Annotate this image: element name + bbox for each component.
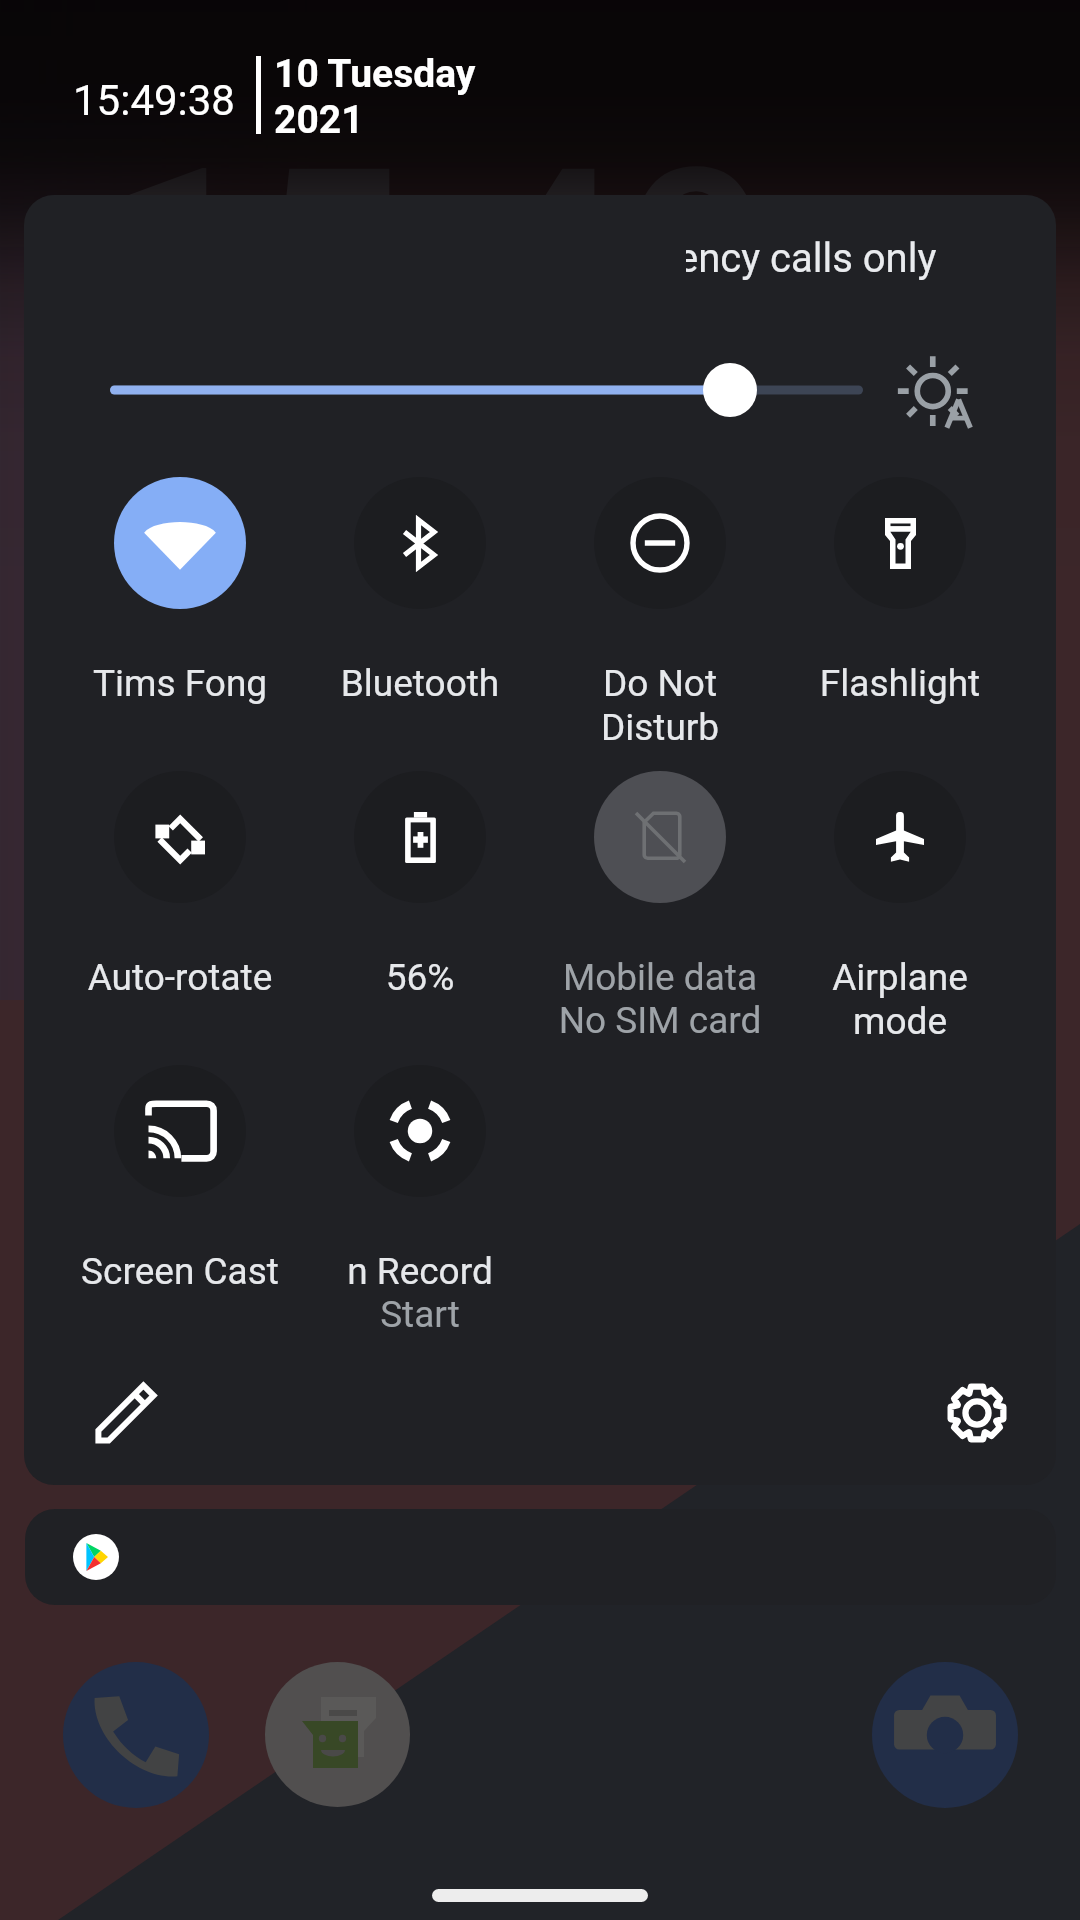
staticText: Auto-rotate xyxy=(62,956,298,999)
button[interactable]: Tims Fong xyxy=(62,471,298,751)
staticText: Do Not Disturb xyxy=(542,662,778,749)
button[interactable]: Flashlight xyxy=(782,471,1018,751)
button[interactable]: Settings xyxy=(929,1365,1025,1461)
button[interactable]: 56% xyxy=(302,765,538,1045)
button[interactable]: Airplane mode xyxy=(782,765,1018,1045)
staticText: 15:49 xyxy=(108,112,774,419)
staticText: n Record xyxy=(302,1250,538,1293)
staticText: No SIM card xyxy=(542,999,778,1042)
button[interactable]: Screen Cast xyxy=(62,1059,298,1339)
staticText: 2021 xyxy=(274,97,364,143)
staticText: Bluetooth xyxy=(302,662,538,705)
staticText: 10 Tuesday xyxy=(274,51,476,97)
staticText: Screen Cast xyxy=(62,1250,298,1293)
staticText: Start xyxy=(302,1293,538,1336)
button[interactable]: n Record xyxy=(302,1059,538,1339)
staticText: Mobile data xyxy=(542,956,778,999)
staticText: ency calls only xyxy=(686,235,937,282)
button[interactable] xyxy=(25,1509,1056,1605)
button[interactable]: Camera xyxy=(872,1662,1018,1808)
button[interactable]: Do Not Disturb xyxy=(542,471,778,751)
staticText: 15:49:38 xyxy=(73,76,235,125)
button[interactable]: Auto-rotate xyxy=(62,765,298,1045)
button[interactable]: Mobile data xyxy=(542,765,778,1045)
staticText: 56% xyxy=(302,956,538,999)
staticText: Flashlight xyxy=(782,662,1018,705)
button[interactable]: Phone xyxy=(63,1662,209,1808)
button[interactable]: Messages xyxy=(265,1662,410,1807)
button[interactable]: Edit tiles xyxy=(78,1365,174,1461)
staticText: Tims Fong xyxy=(62,662,298,705)
staticText: Airplane mode xyxy=(782,956,1018,1043)
button[interactable]: Bluetooth xyxy=(302,471,538,751)
